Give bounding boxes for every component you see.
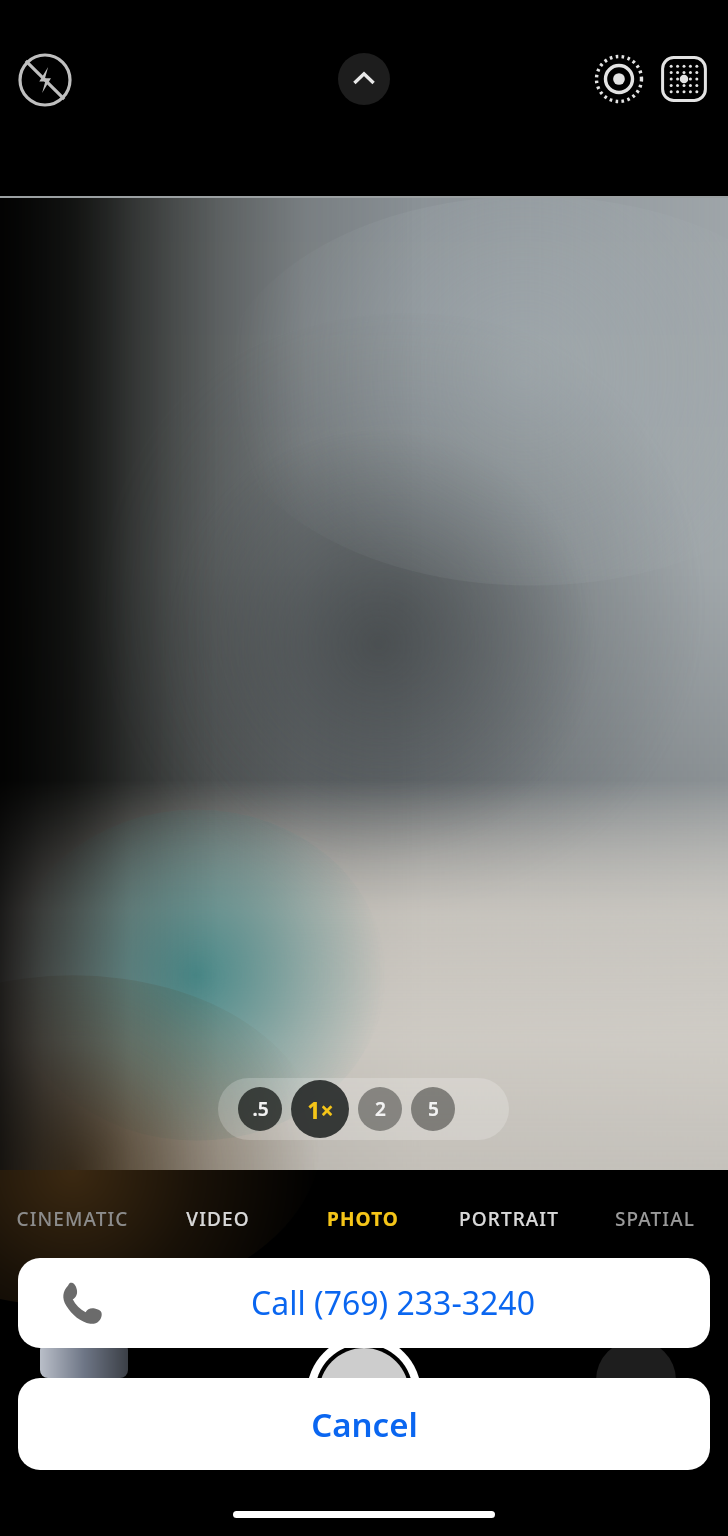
button[interactable]: PORTRAIT bbox=[436, 1206, 582, 1232]
button[interactable]: CINEMATIC bbox=[0, 1206, 145, 1232]
staticText: PHOTO bbox=[327, 1206, 399, 1232]
button[interactable]: SPATIAL bbox=[582, 1206, 728, 1232]
staticText: .5 bbox=[252, 1096, 269, 1122]
staticText: Cancel bbox=[311, 1402, 418, 1447]
button[interactable]: 1× bbox=[291, 1080, 349, 1138]
button[interactable]: PHOTO bbox=[290, 1206, 436, 1232]
staticText: PORTRAIT bbox=[459, 1206, 559, 1232]
staticText: 1× bbox=[307, 1094, 334, 1125]
staticText: 5 bbox=[428, 1096, 439, 1122]
button[interactable]: Live Photo bbox=[589, 49, 649, 109]
button[interactable]: Photographic Styles bbox=[654, 49, 714, 109]
staticText: Call (769) 233-3240 bbox=[251, 1281, 535, 1325]
button[interactable]: .5 bbox=[238, 1087, 282, 1131]
button[interactable]: Show more camera controls bbox=[338, 53, 390, 105]
staticText: VIDEO bbox=[186, 1206, 250, 1232]
button[interactable]: Call (769) 233-3240 bbox=[18, 1258, 710, 1348]
staticText: SPATIAL bbox=[615, 1206, 695, 1232]
button[interactable]: Cancel bbox=[18, 1378, 710, 1470]
button[interactable]: 5 bbox=[411, 1087, 455, 1131]
button[interactable]: 2 bbox=[358, 1087, 402, 1131]
button[interactable]: Photo library bbox=[40, 1342, 128, 1378]
button[interactable]: Take photo bbox=[307, 1336, 421, 1450]
staticText: CINEMATIC bbox=[16, 1206, 129, 1232]
button[interactable]: VIDEO bbox=[145, 1206, 290, 1232]
button[interactable]: Flash off bbox=[14, 49, 76, 111]
staticText: 2 bbox=[375, 1096, 386, 1122]
button[interactable]: Switch camera bbox=[596, 1340, 676, 1420]
